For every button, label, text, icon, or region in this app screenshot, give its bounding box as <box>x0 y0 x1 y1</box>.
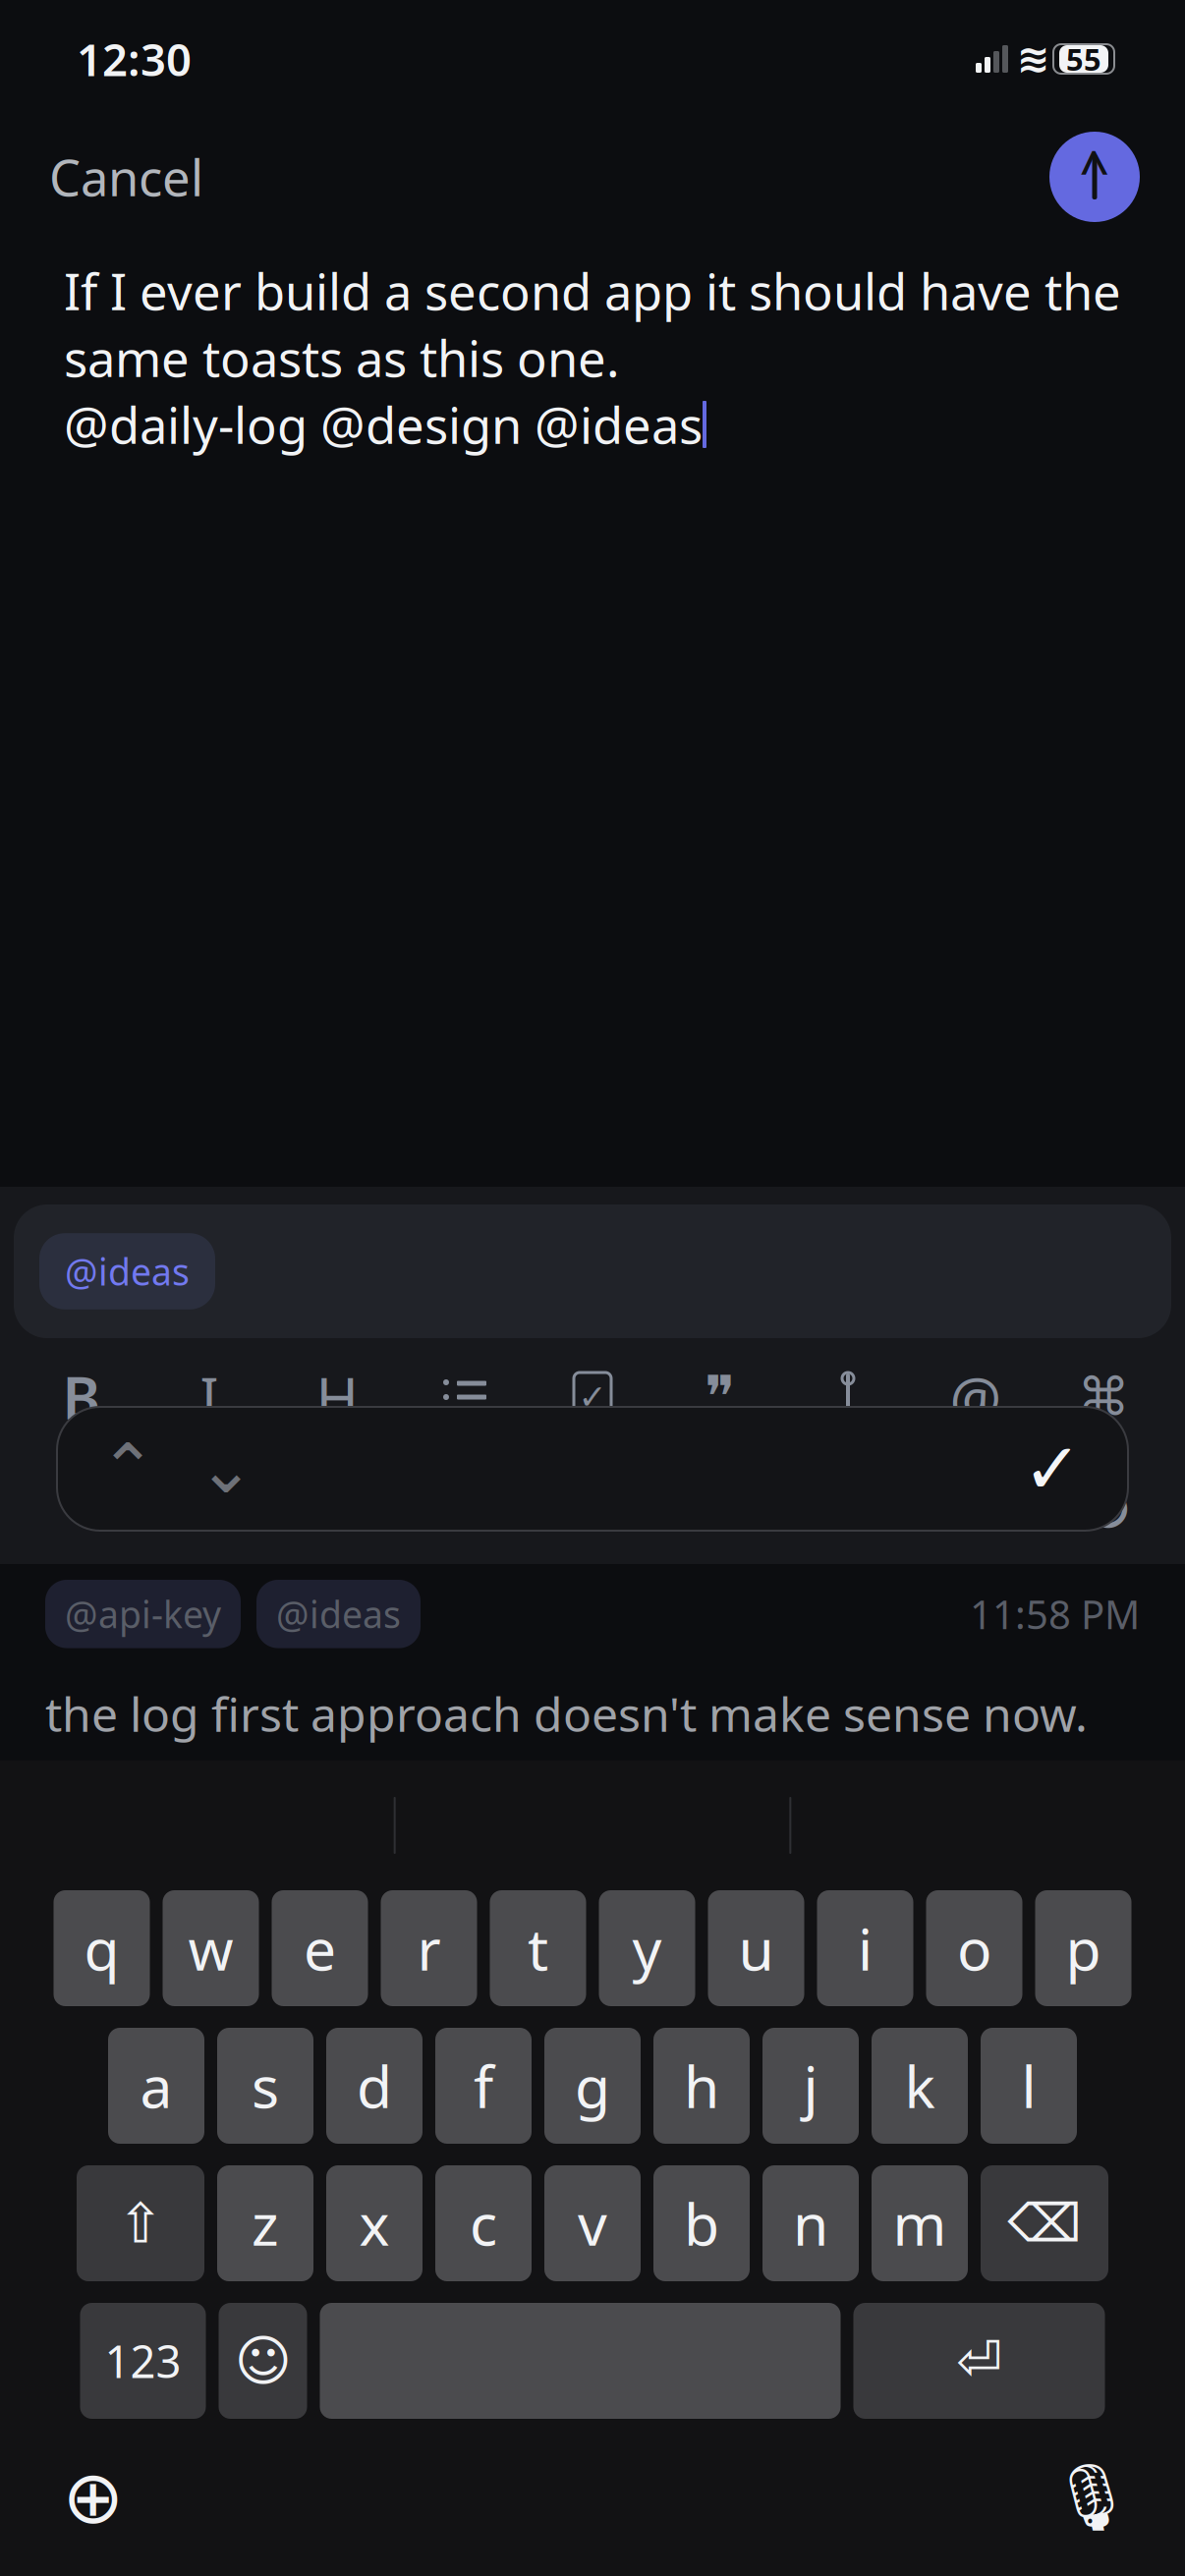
button[interactable]: 123 <box>80 2303 206 2419</box>
button[interactable]: Bulleted list <box>426 1355 503 1439</box>
button[interactable]: q <box>54 1890 150 2006</box>
button[interactable]: m <box>872 2165 968 2281</box>
staticText: d <box>357 2047 392 2124</box>
button[interactable]: Cancel <box>45 130 207 224</box>
staticText: @ideas <box>65 1247 190 1296</box>
button[interactable]: Commands <box>1065 1355 1142 1439</box>
staticText: @ideas <box>276 1590 401 1638</box>
button[interactable]: Send <box>1049 132 1140 222</box>
staticText: b <box>684 2185 719 2262</box>
staticText: g <box>575 2047 610 2124</box>
staticText: m <box>893 2185 947 2262</box>
staticText: l <box>1021 2047 1036 2124</box>
button[interactable]: t <box>490 1890 586 2006</box>
button[interactable]: @ideas <box>39 1233 215 1309</box>
staticText: p <box>1066 1910 1101 1986</box>
button[interactable]: Next field <box>177 1415 275 1523</box>
button[interactable]: Checklist <box>554 1355 631 1439</box>
button[interactable]: Previous field <box>79 1415 177 1523</box>
button[interactable]: c <box>435 2165 532 2281</box>
button[interactable]: ⏎ <box>853 2303 1105 2419</box>
staticText: If I ever build a second app it should h… <box>64 258 1121 324</box>
staticText: z <box>252 2185 279 2262</box>
button[interactable]: s <box>217 2028 313 2144</box>
staticText: ⌃ <box>99 1430 156 1507</box>
button[interactable]: f <box>435 2028 532 2144</box>
staticText: x <box>359 2185 390 2262</box>
staticText: @daily-log @design @ideas <box>64 391 703 458</box>
staticText: ✓ <box>1023 1429 1082 1509</box>
button[interactable]: Heading <box>299 1355 375 1439</box>
button[interactable]: i <box>817 1890 913 2006</box>
staticText: ↺ <box>945 1474 998 1546</box>
staticText: 123 <box>105 2331 181 2390</box>
button[interactable]: ⇧ <box>77 2165 204 2281</box>
button[interactable]: j <box>762 2028 859 2144</box>
staticText: ⌫ <box>1008 2194 1081 2253</box>
staticText: ⌘ <box>1077 1367 1129 1427</box>
staticText: I <box>200 1361 219 1434</box>
button[interactable]: e <box>272 1890 368 2006</box>
button[interactable]: n <box>762 2165 859 2281</box>
staticText: H <box>316 1359 358 1435</box>
staticText: ≋ <box>1017 37 1050 81</box>
staticText: ✓ <box>578 1378 607 1416</box>
staticText: s <box>252 2047 279 2124</box>
button[interactable]: Link <box>810 1355 886 1439</box>
staticText: k <box>904 2047 935 2124</box>
staticText: B <box>62 1359 101 1435</box>
button[interactable]: u <box>708 1890 804 2006</box>
button[interactable]: Quote <box>682 1355 759 1439</box>
button[interactable]: p <box>1035 1890 1131 2006</box>
button[interactable]: b <box>653 2165 750 2281</box>
staticText: r <box>417 1910 441 1986</box>
button[interactable]: Switch keyboard <box>39 2443 147 2551</box>
button[interactable]: ⌫ <box>981 2165 1108 2281</box>
staticText: o <box>957 1910 991 1986</box>
button[interactable]: a <box>108 2028 204 2144</box>
button[interactable]: z <box>217 2165 313 2281</box>
button[interactable]: Bold <box>43 1355 120 1439</box>
staticText: q <box>84 1910 119 1986</box>
button[interactable]: g <box>544 2028 641 2144</box>
button[interactable]: Undo <box>933 1468 1010 1552</box>
staticText: e <box>304 1910 336 1986</box>
staticText: Cancel <box>49 144 203 210</box>
button[interactable]: Done <box>998 1415 1106 1523</box>
button[interactable]: d <box>326 2028 423 2144</box>
staticText: h <box>684 2047 719 2124</box>
button[interactable]: h <box>653 2028 750 2144</box>
button[interactable]: l <box>981 2028 1077 2144</box>
button[interactable]: v <box>544 2165 641 2281</box>
staticText: a <box>140 2047 172 2124</box>
button[interactable]: y <box>599 1890 695 2006</box>
button[interactable]: x <box>326 2165 423 2281</box>
button[interactable]: Mention <box>937 1355 1014 1439</box>
button[interactable]: Redo <box>1069 1468 1146 1552</box>
staticText: 🎙 <box>1050 2460 1133 2535</box>
staticText: t <box>528 1910 548 1986</box>
button[interactable]: w <box>163 1890 259 2006</box>
staticText: n <box>793 2185 828 2262</box>
staticText: ^ <box>1079 133 1110 203</box>
staticText: y <box>632 1910 662 1986</box>
button[interactable]: r <box>381 1890 477 2006</box>
button[interactable]: o <box>926 1890 1022 2006</box>
staticText: ⊕ <box>62 2456 124 2539</box>
staticText: v <box>578 2185 607 2262</box>
staticText: @api-key <box>65 1590 221 1638</box>
staticText: j <box>803 2047 818 2124</box>
button[interactable]: ☺ <box>219 2303 307 2419</box>
staticText: u <box>738 1910 774 1986</box>
staticText: the log first approach doesn't make sens… <box>45 1682 1088 1745</box>
staticText: i <box>858 1910 873 1986</box>
button[interactable]: Italic <box>171 1355 248 1439</box>
button[interactable]: k <box>872 2028 968 2144</box>
staticText: 11:58 PM <box>970 1588 1140 1640</box>
staticText: w <box>188 1910 233 1986</box>
staticText: ⌄ <box>197 1430 254 1507</box>
button[interactable]: Dictate <box>1038 2443 1146 2551</box>
staticText: f <box>474 2047 493 2124</box>
